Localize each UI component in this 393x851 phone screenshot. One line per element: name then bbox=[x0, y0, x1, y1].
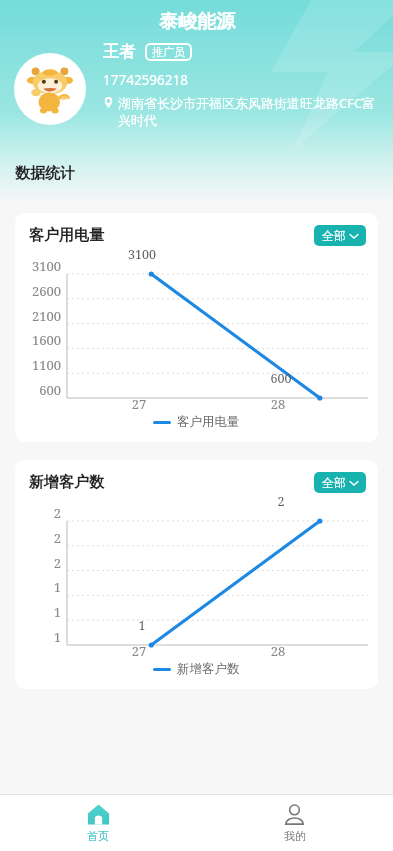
staticText: 新增客户数 bbox=[29, 473, 104, 492]
staticText: 1600 bbox=[19, 331, 61, 349]
staticText: 推广员 bbox=[152, 45, 185, 59]
staticText: 1 bbox=[19, 628, 61, 646]
button[interactable]: 我的 bbox=[196, 795, 393, 851]
button[interactable]: 首页 bbox=[0, 795, 196, 851]
staticText: 27 bbox=[129, 642, 149, 660]
button[interactable]: 推广员 bbox=[145, 43, 192, 61]
staticText: 17742596218 bbox=[103, 71, 188, 89]
staticText: 1 bbox=[127, 617, 157, 634]
staticText: 全部 bbox=[322, 228, 346, 243]
staticText: 湖南省长沙市开福区东风路街道旺龙路CFC富兴时代 bbox=[118, 94, 383, 129]
staticText: 王者 bbox=[103, 42, 135, 62]
staticText: 1 bbox=[19, 578, 61, 596]
staticText: 1100 bbox=[19, 356, 61, 374]
staticText: 28 bbox=[268, 395, 288, 413]
staticText: 2 bbox=[19, 554, 61, 572]
staticText: 我的 bbox=[284, 829, 306, 843]
staticText: 2100 bbox=[19, 307, 61, 325]
button[interactable]: Avatar bbox=[14, 53, 86, 125]
button[interactable]: 全部 bbox=[314, 472, 366, 493]
staticText: 客户用电量 bbox=[29, 226, 104, 245]
staticText: 首页 bbox=[87, 829, 109, 843]
staticText: 600 bbox=[19, 381, 61, 399]
staticText: 2 bbox=[19, 504, 61, 522]
staticText: 客户用电量 bbox=[177, 414, 240, 430]
staticText: 3100 bbox=[127, 246, 157, 263]
staticText: 3100 bbox=[19, 257, 61, 275]
staticText: 泰峻能源 bbox=[159, 10, 235, 34]
staticText: 2600 bbox=[19, 282, 61, 300]
staticText: 2 bbox=[266, 493, 296, 510]
staticText: 2 bbox=[19, 529, 61, 547]
staticText: 600 bbox=[266, 370, 296, 387]
staticText: 27 bbox=[129, 395, 149, 413]
staticText: 全部 bbox=[322, 475, 346, 490]
staticText: 28 bbox=[268, 642, 288, 660]
staticText: 1 bbox=[19, 603, 61, 621]
button[interactable]: 全部 bbox=[314, 225, 366, 246]
staticText: 新增客户数 bbox=[177, 661, 240, 677]
staticText: 数据统计 bbox=[15, 164, 75, 183]
